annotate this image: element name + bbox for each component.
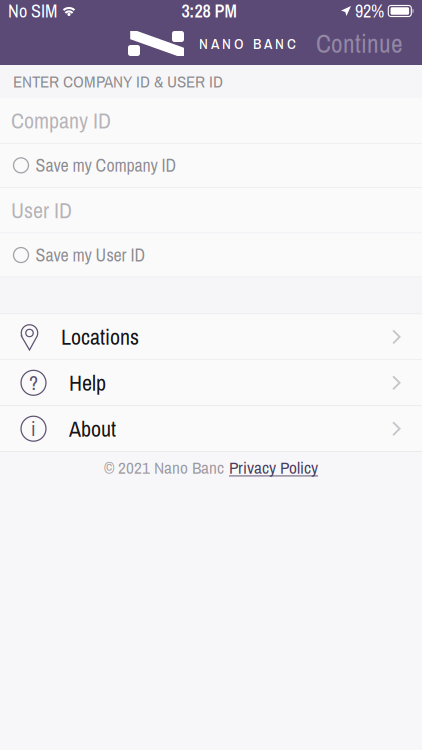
staticText: ENTER COMPANY ID & USER ID [13,70,223,93]
button[interactable]: Continue [297,22,422,65]
staticText: 92% [355,0,384,23]
button[interactable]: Save my Company ID [0,144,422,187]
staticText: Continue [316,26,403,60]
staticText: i [31,415,36,442]
staticText: N A N O B A N C [199,33,296,53]
staticText: ? [29,369,38,396]
staticText: Save my User ID [35,243,145,267]
button[interactable]: i [0,406,422,451]
button[interactable]: Save my User ID [0,233,422,277]
staticText: Privacy Policy [229,456,318,479]
staticText: Help [69,368,106,398]
staticText: Locations [61,322,139,352]
button[interactable]: ? [0,360,422,405]
staticText: User ID [11,195,72,225]
staticText: © 2021 Nano Banc [104,456,224,479]
button[interactable]: Company ID [0,98,422,143]
staticText: No SIM [8,0,57,23]
staticText: Save my Company ID [35,153,176,177]
staticText: About [69,414,116,443]
button[interactable]: Locations [0,314,422,359]
staticText: Company ID [11,106,111,135]
button[interactable]: Privacy Policy [229,456,318,479]
staticText: 3:28 PM [181,0,236,23]
button[interactable]: User ID [0,188,422,233]
